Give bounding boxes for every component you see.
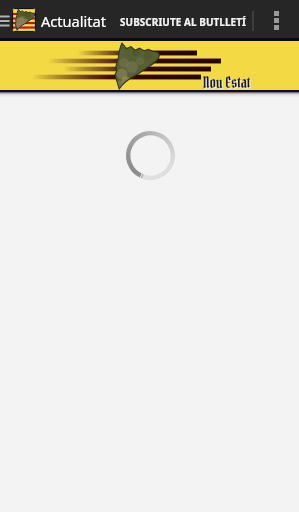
button[interactable]: SUBSCRIUTE AL BUTLLETÍ xyxy=(112,0,252,38)
staticText: Nou Estat xyxy=(204,74,252,93)
button[interactable]: Menu xyxy=(0,8,14,34)
staticText: SUBSCRIUTE AL BUTLLETÍ xyxy=(120,15,246,28)
staticText: Actualitat xyxy=(41,11,107,31)
button[interactable]: More options xyxy=(262,0,290,38)
staticText: Nou Estat xyxy=(203,73,251,92)
